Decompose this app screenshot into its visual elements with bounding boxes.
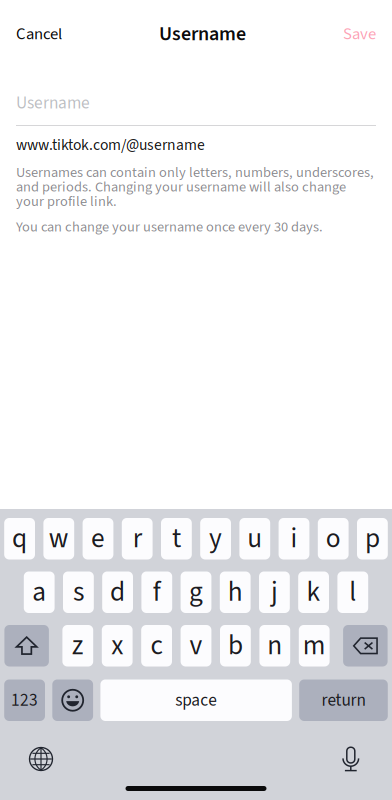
staticText: r — [133, 519, 142, 558]
button[interactable]: g — [181, 571, 211, 613]
button[interactable]: l — [337, 571, 368, 613]
button[interactable]: n — [259, 625, 290, 666]
button[interactable]: f — [141, 571, 172, 613]
staticText: f — [153, 573, 161, 612]
staticText: l — [349, 573, 356, 612]
button[interactable]: x — [102, 625, 133, 666]
staticText: a — [32, 573, 46, 612]
button[interactable]: space — [100, 679, 292, 721]
button[interactable]: b — [220, 625, 251, 666]
staticText: w — [49, 519, 69, 558]
button[interactable]: z — [62, 625, 93, 666]
staticText: q — [12, 519, 27, 558]
staticText: v — [189, 626, 202, 665]
staticText: i — [290, 519, 297, 558]
staticText: n — [267, 626, 282, 665]
staticText: o — [326, 519, 341, 558]
button[interactable]: Shift — [4, 625, 49, 666]
button[interactable]: y — [200, 518, 231, 559]
button[interactable]: j — [259, 571, 290, 613]
staticText: u — [247, 519, 262, 558]
staticText: Username — [159, 20, 246, 48]
staticText: Cancel — [16, 22, 62, 46]
button[interactable]: r — [122, 518, 153, 559]
staticText: space — [175, 688, 217, 713]
staticText: x — [111, 626, 123, 665]
button[interactable]: i — [279, 518, 309, 559]
staticText: j — [271, 573, 278, 612]
staticText: d — [110, 573, 125, 612]
button[interactable]: q — [4, 518, 35, 559]
staticText: p — [365, 519, 380, 558]
staticText: y — [209, 519, 222, 558]
staticText: Save — [343, 22, 376, 46]
button[interactable]: c — [141, 625, 172, 666]
staticText: z — [72, 626, 84, 665]
staticText: e — [91, 519, 105, 558]
staticText: m — [303, 626, 326, 665]
button[interactable]: e — [83, 518, 113, 559]
staticText: s — [73, 573, 84, 612]
button[interactable]: Cancel — [16, 14, 62, 54]
staticText: b — [228, 626, 243, 665]
staticText: 123 — [11, 688, 38, 713]
button[interactable]: 123 — [4, 679, 45, 721]
button[interactable]: Delete — [343, 625, 388, 666]
button[interactable]: Next keyboard — [19, 744, 63, 774]
button[interactable]: Save — [343, 14, 376, 54]
staticText: t — [172, 519, 181, 558]
button[interactable]: d — [102, 571, 133, 613]
button[interactable]: return — [299, 679, 388, 721]
button[interactable]: v — [181, 625, 211, 666]
staticText: return — [321, 688, 365, 713]
staticText: Username — [16, 91, 90, 115]
staticText: h — [228, 573, 243, 612]
button[interactable]: a — [24, 571, 55, 613]
button[interactable]: h — [220, 571, 251, 613]
button[interactable]: u — [239, 518, 270, 559]
button[interactable]: m — [299, 625, 330, 666]
button[interactable]: t — [161, 518, 192, 559]
button[interactable]: Emoji — [52, 679, 93, 721]
staticText: k — [307, 573, 321, 612]
button[interactable]: Dictation — [329, 744, 373, 774]
button[interactable]: s — [63, 571, 94, 613]
button[interactable]: w — [43, 518, 74, 559]
staticText: g — [189, 573, 203, 612]
button[interactable]: o — [318, 518, 349, 559]
button[interactable]: p — [357, 518, 388, 559]
staticText: www.tiktok.com/@username — [16, 134, 205, 156]
staticText: c — [151, 626, 163, 665]
staticText: You can change your username once every … — [16, 217, 323, 237]
staticText: Usernames can contain only letters, numb… — [16, 162, 374, 212]
button[interactable]: k — [298, 571, 329, 613]
